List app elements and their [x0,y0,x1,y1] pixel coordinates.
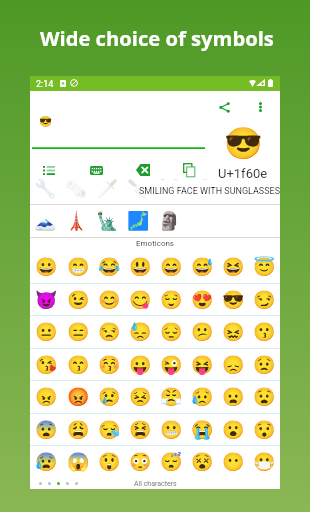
button[interactable]: 🔧 [30,172,61,204]
button[interactable]: 😉 [62,283,94,315]
button[interactable]: 😥 [187,380,218,412]
button[interactable]: 😨 [30,413,62,445]
staticText: 😁 [67,256,90,277]
staticText: 😒 [98,321,121,342]
button[interactable]: 😂 [94,250,125,282]
button[interactable]: 😄 [156,250,187,282]
button[interactable]: 😎 [32,112,208,150]
button[interactable]: Page 3 [54,479,63,488]
button[interactable]: 😩 [62,413,94,445]
button[interactable]: More options [249,96,271,118]
staticText: 😲 [98,451,121,472]
staticText: SMILING FACE WITH SUNGLASSES [139,186,280,197]
button[interactable]: 😟 [249,348,280,380]
button[interactable]: 😓 [125,315,156,347]
button[interactable]: 😮 [218,413,249,445]
button[interactable]: 💡 [216,172,247,204]
button[interactable]: Page 4 [63,479,72,488]
staticText: 🔗 [189,178,212,199]
button[interactable]: Backspace [132,159,154,181]
button[interactable]: 🔗 [185,172,216,204]
button[interactable]: 😍 [187,283,218,315]
button[interactable]: 😚 [94,348,125,380]
button[interactable]: 😤 [156,380,187,412]
button[interactable]: 🗞 [61,172,92,204]
button[interactable]: 😌 [156,283,187,315]
staticText: U+1f60e [218,166,268,181]
button[interactable]: 😵 [187,445,218,477]
staticText: 🗻 [34,210,57,231]
button[interactable]: 😏 [249,283,280,315]
button[interactable]: 😔 [156,315,187,347]
button[interactable]: 😙 [62,348,94,380]
button[interactable]: 😛 [125,348,156,380]
staticText: 😐 [35,321,58,342]
button[interactable]: 😰 [30,445,62,477]
button[interactable]: Symbol list [38,159,60,181]
button[interactable]: 😅 [187,250,218,282]
button[interactable]: 😋 [125,283,156,315]
button[interactable]: 😁 [62,250,94,282]
button[interactable]: Page 2 [45,479,54,488]
button[interactable]: 😷 [249,445,280,477]
button[interactable]: 🗾 [123,204,154,236]
button[interactable]: Share [213,96,235,118]
button[interactable]: Keyboard [85,159,107,181]
button[interactable]: 🔩 [247,172,278,204]
button[interactable]: 😃 [125,250,156,282]
button[interactable]: 😳 [125,445,156,477]
button[interactable]: 🗻 [30,204,61,236]
button[interactable]: 😫 [125,413,156,445]
button[interactable]: 😆 [218,250,249,282]
button[interactable]: Copy [178,159,200,181]
button[interactable]: 😇 [249,250,280,282]
button[interactable]: 😎 [218,283,249,315]
staticText: 2:14 [36,79,54,90]
button[interactable]: 🗿 [154,204,185,236]
button[interactable]: 🗼 [61,204,92,236]
staticText: 😚 [98,354,121,375]
button[interactable]: 😖 [218,315,249,347]
button[interactable]: 😎 [215,125,271,181]
button[interactable] [152,180,280,202]
button[interactable]: 😬 [156,413,187,445]
button[interactable]: Page 1 [36,479,45,488]
button[interactable]: 😪 [94,413,125,445]
button[interactable]: 😴 [156,445,187,477]
button[interactable]: 😘 [30,348,62,380]
staticText: 😄 [160,256,183,277]
button[interactable]: 🔪 [123,172,154,204]
button[interactable]: 😗 [249,315,280,347]
button[interactable]: 😲 [94,445,125,477]
button[interactable]: 😑 [62,315,94,347]
button[interactable]: 😠 [30,380,62,412]
staticText: 😧 [253,386,276,407]
button[interactable]: 😭 [187,413,218,445]
button[interactable]: 😣 [125,380,156,412]
button[interactable]: 😝 [187,348,218,380]
button[interactable]: 😀 [30,250,62,282]
button[interactable]: 😜 [156,348,187,380]
staticText: 😏 [253,289,276,310]
button[interactable]: 😊 [94,283,125,315]
button[interactable]: 😕 [187,315,218,347]
button[interactable]: 😶 [218,445,249,477]
button[interactable]: 😦 [218,380,249,412]
button[interactable]: 😒 [94,315,125,347]
button[interactable]: 🗽 [92,204,123,236]
button[interactable]: 😱 [62,445,94,477]
button[interactable]: ✂️ [154,172,185,204]
staticText: 😇 [253,256,276,277]
button[interactable]: 😢 [94,380,125,412]
button[interactable]: 😯 [249,413,280,445]
staticText: All characters [134,480,177,488]
button[interactable]: Page 5 [72,479,81,488]
staticText: 😕 [191,321,214,342]
button[interactable]: 😡 [62,380,94,412]
staticText: 😘 [35,354,58,375]
button[interactable]: 😐 [30,315,62,347]
button[interactable]: 😧 [249,380,280,412]
button[interactable]: 😞 [218,348,249,380]
button[interactable]: 😈 [30,283,62,315]
button[interactable]: 🗡 [92,172,123,204]
